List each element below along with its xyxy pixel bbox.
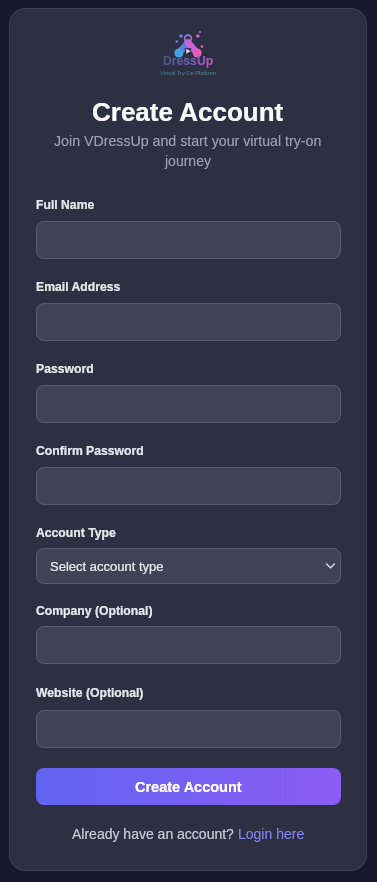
staticText: Virtual Try-On Platform (160, 70, 216, 76)
button[interactable] (36, 385, 341, 423)
button[interactable]: Login here (238, 826, 305, 842)
staticText: Confirm Password (36, 444, 144, 458)
button[interactable] (36, 221, 341, 259)
staticText: Already have an account? (72, 826, 238, 842)
staticText: Select account type (50, 559, 164, 574)
button[interactable]: Create Account (36, 768, 341, 805)
staticText: Email Address (36, 280, 121, 294)
button[interactable] (36, 710, 341, 748)
staticText: Create Account (135, 779, 242, 795)
staticText: Password (36, 362, 94, 376)
staticText: Create Account (92, 97, 284, 126)
button[interactable] (36, 467, 341, 505)
button[interactable]: Select account type (36, 548, 341, 584)
staticText: Account Type (36, 526, 116, 540)
staticText: DressUp (163, 54, 214, 68)
staticText: Company (Optional) (36, 604, 153, 618)
button[interactable] (36, 626, 341, 664)
staticText: Join VDressUp and start your virtual try… (54, 133, 322, 149)
staticText: journey (165, 153, 211, 169)
staticText: Full Name (36, 198, 95, 212)
button[interactable] (36, 303, 341, 341)
staticText: Website (Optional) (36, 686, 144, 700)
